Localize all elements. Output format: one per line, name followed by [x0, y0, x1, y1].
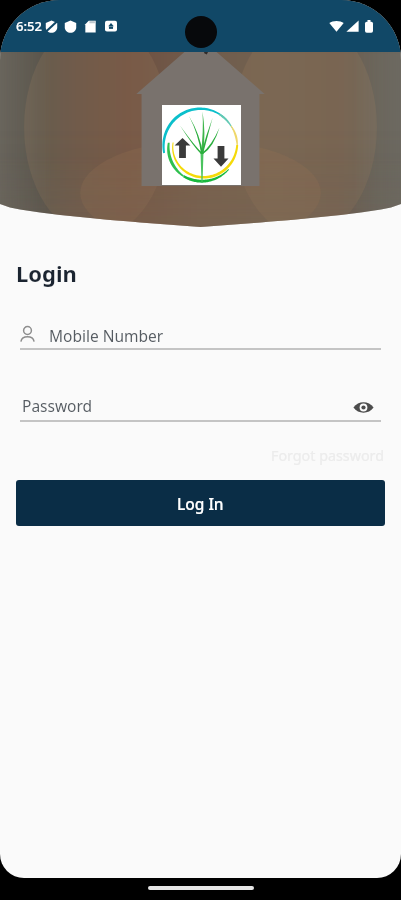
- staticText: Login: [16, 258, 77, 288]
- staticText: Forgot password: [271, 446, 384, 465]
- button[interactable]: Show password: [350, 394, 376, 420]
- button[interactable]: Forgot password: [271, 443, 384, 468]
- button[interactable]: Mobile Number: [20, 325, 381, 351]
- staticText: Password: [22, 395, 93, 416]
- button[interactable]: Password: [22, 395, 381, 421]
- button[interactable]: Log In: [16, 480, 385, 526]
- staticText: Log In: [177, 493, 224, 514]
- staticText: 6:52: [16, 17, 42, 35]
- staticText: Mobile Number: [49, 325, 164, 346]
